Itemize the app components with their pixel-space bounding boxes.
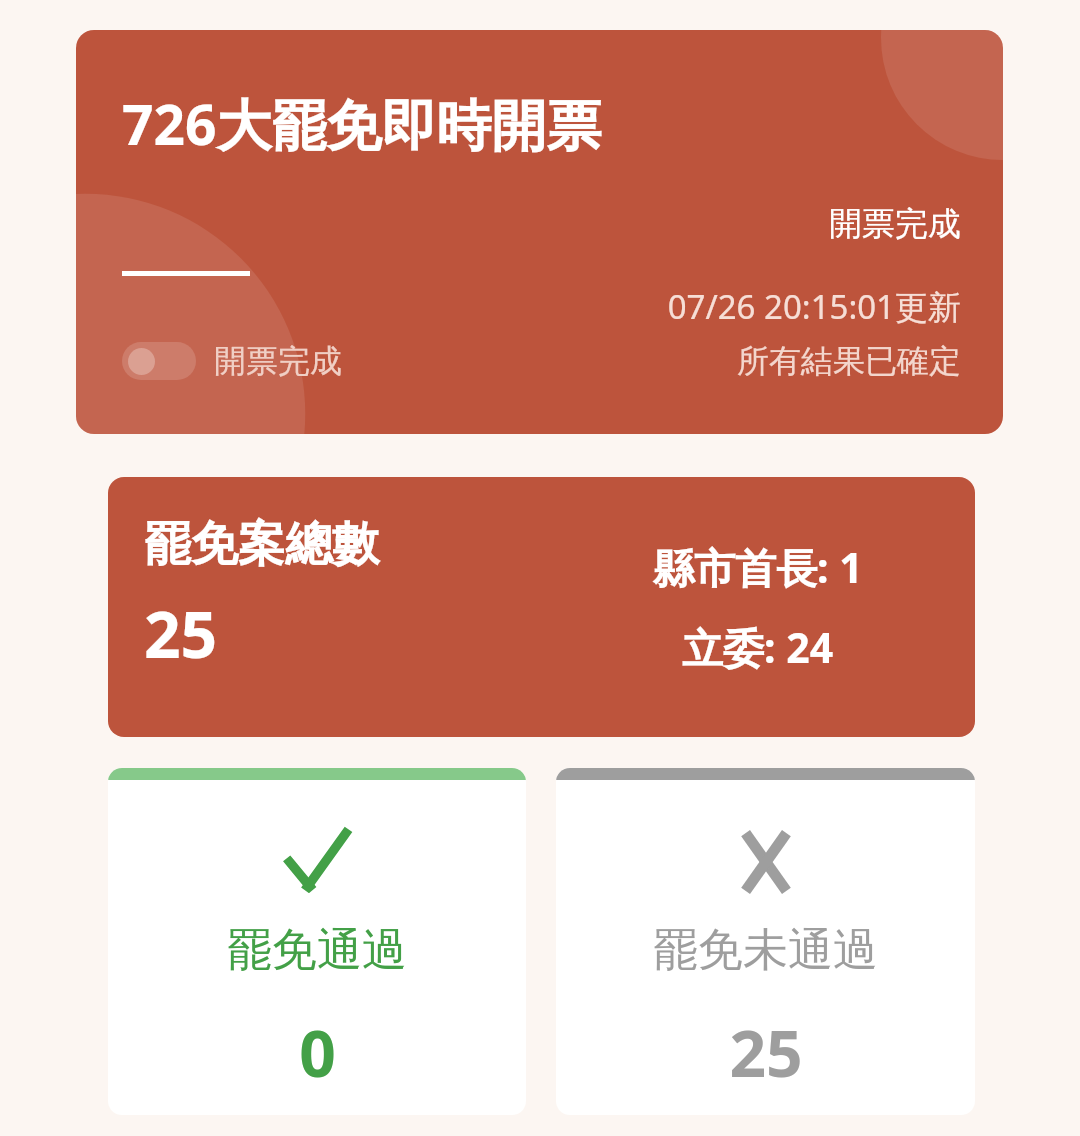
staticText: 0: [299, 1009, 336, 1096]
other: Recall passed: [281, 826, 353, 898]
staticText: 07/26 20:15:01更新: [76, 284, 961, 329]
other: Recall not passed: [730, 826, 802, 898]
staticText: 所有結果已確定: [737, 341, 961, 381]
staticText: 25: [144, 590, 218, 677]
button[interactable]: 開票完成: [122, 341, 342, 381]
button[interactable]: 726大罷免即時開票: [76, 30, 1003, 434]
staticText: 726大罷免即時開票: [122, 86, 602, 161]
staticText: 開票完成: [76, 203, 961, 245]
staticText: 立委: 24: [682, 619, 834, 675]
staticText: 罷免未通過: [653, 922, 878, 979]
staticText: 罷免案總數: [144, 515, 379, 574]
staticText: 罷免通過: [227, 922, 407, 979]
staticText: 25: [729, 1009, 803, 1096]
staticText: 開票完成: [214, 341, 342, 381]
button[interactable]: Recall not passed: [556, 768, 975, 1115]
button[interactable]: 罷免案總數: [108, 477, 975, 737]
staticText: 縣市首長: 1: [653, 539, 863, 595]
button[interactable]: Recall passed: [108, 768, 526, 1115]
